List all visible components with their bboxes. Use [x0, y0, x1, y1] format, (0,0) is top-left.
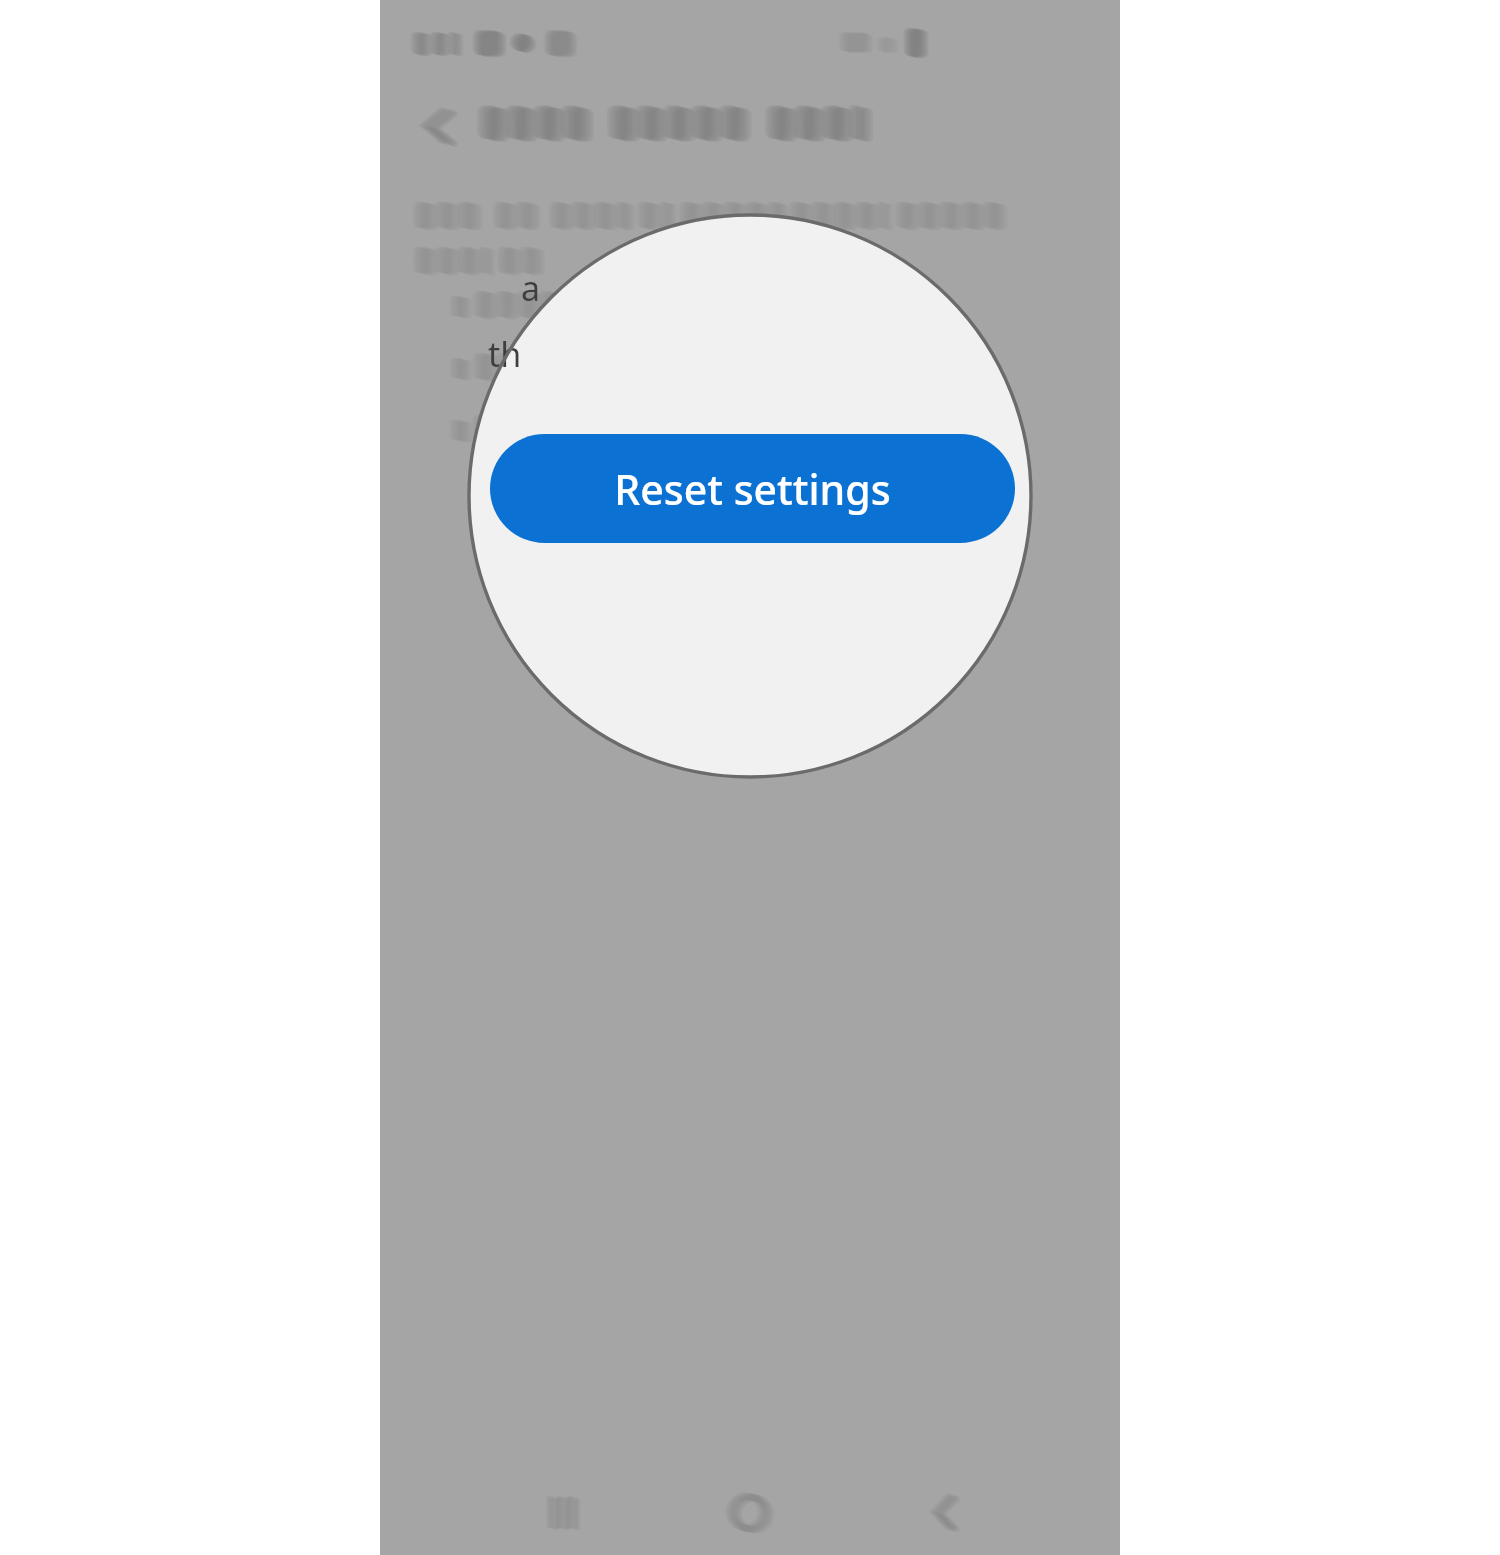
staticText: Reset settings — [614, 461, 891, 517]
staticText: th — [488, 331, 522, 377]
staticText: a — [521, 265, 541, 311]
button[interactable]: Reset settings — [490, 434, 1015, 543]
